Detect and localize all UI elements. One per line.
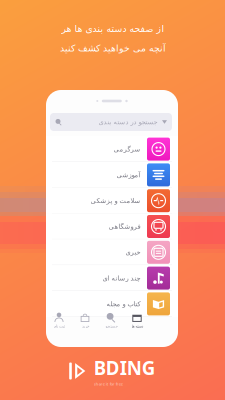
staticText: سلامت و پزشکی <box>90 197 140 204</box>
button[interactable]: چند رسانه ای <box>46 265 178 291</box>
staticText: از صفحه دسته بندی ها هر <box>61 23 164 34</box>
button[interactable]: سرگرمی <box>46 136 178 162</box>
staticText: سرگرمی <box>113 145 140 153</box>
button[interactable]: ثبت نام <box>46 312 72 328</box>
staticText: آموزشی <box>116 171 140 179</box>
staticText: کتاب و مجله <box>106 300 140 308</box>
staticText: share it for free <box>94 381 123 386</box>
staticText: دسته ها <box>131 324 143 328</box>
button[interactable]: آموزشی <box>46 162 178 188</box>
button[interactable]: فروشگاهی <box>46 214 178 239</box>
staticText: خبری <box>125 248 140 256</box>
staticText: چند رسانه ای <box>102 274 140 282</box>
button[interactable]: کتاب و مجله <box>46 291 178 317</box>
staticText: خرید <box>81 324 88 328</box>
staticText: آنچه می خواهید کشف کنید <box>59 43 165 54</box>
staticText: فروشگاهی <box>108 223 140 230</box>
button[interactable]: خبری <box>46 239 178 265</box>
staticText: جستجو <box>105 324 117 328</box>
button[interactable]: خرید <box>72 312 98 328</box>
staticText: BDING <box>94 355 156 380</box>
button[interactable]: سلامت و پزشکی <box>46 188 178 214</box>
button[interactable]: جستجو <box>98 312 124 328</box>
staticText: ثبت نام <box>53 324 64 328</box>
button[interactable]: دسته ها <box>124 312 150 328</box>
staticText: جستجو در دسته بندی <box>98 118 157 126</box>
